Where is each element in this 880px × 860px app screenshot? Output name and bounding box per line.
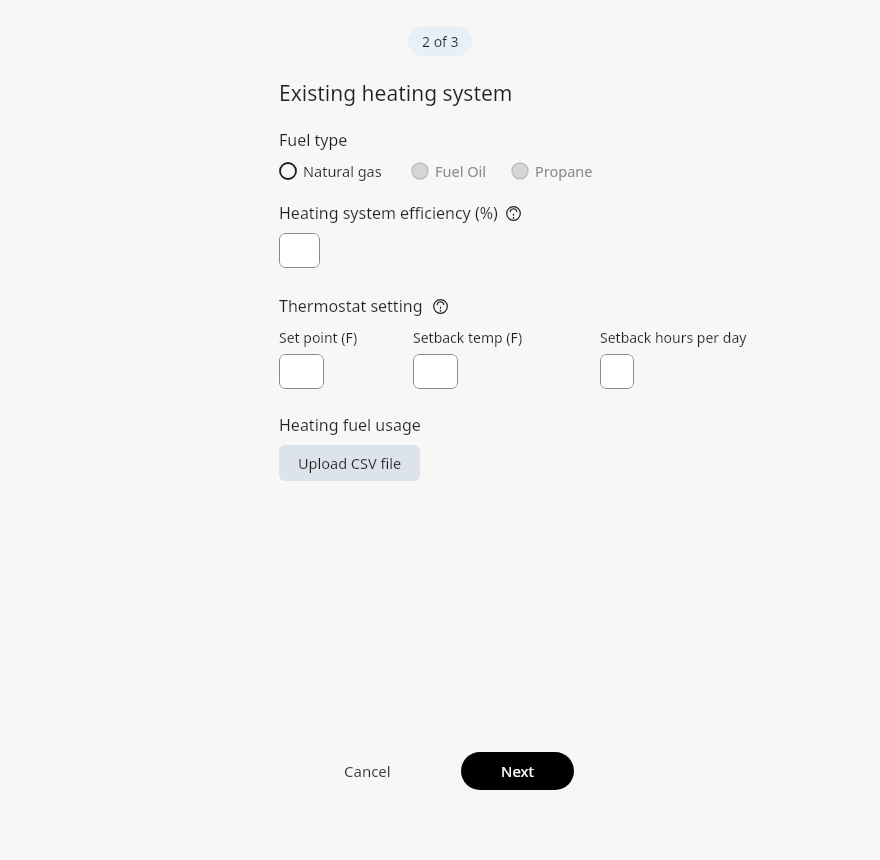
staticText: 2 of 3 <box>422 32 459 51</box>
button[interactable]: 2 of 3 <box>408 26 472 56</box>
button[interactable]: Cancel <box>330 752 405 790</box>
staticText: Fuel type <box>279 129 348 151</box>
staticText: Setback temp (F) <box>413 328 523 347</box>
button[interactable] <box>279 354 324 389</box>
staticText: Propane <box>535 161 593 181</box>
staticText: Heating fuel usage <box>279 414 421 436</box>
button[interactable] <box>600 354 634 389</box>
staticText: Natural gas <box>303 161 382 181</box>
staticText: Next <box>501 761 534 781</box>
button[interactable] <box>279 233 320 268</box>
other: Help <box>506 206 521 221</box>
staticText: Existing heating system <box>279 79 513 108</box>
staticText: Set point (F) <box>279 328 358 347</box>
staticText: Fuel Oil <box>435 161 486 181</box>
button[interactable]: Fuel Oil <box>411 161 486 181</box>
button[interactable] <box>413 354 458 389</box>
staticText: Upload CSV file <box>298 453 402 473</box>
button[interactable]: Upload CSV file <box>279 445 420 481</box>
staticText: Cancel <box>344 761 391 781</box>
button[interactable]: Next <box>461 752 574 790</box>
staticText: Thermostat setting <box>279 295 423 317</box>
button[interactable]: Natural gas <box>279 161 382 181</box>
staticText: Setback hours per day <box>600 328 747 347</box>
staticText: Heating system efficiency (%) <box>279 202 498 224</box>
button[interactable]: Propane <box>511 161 593 181</box>
other: Help <box>433 299 448 314</box>
